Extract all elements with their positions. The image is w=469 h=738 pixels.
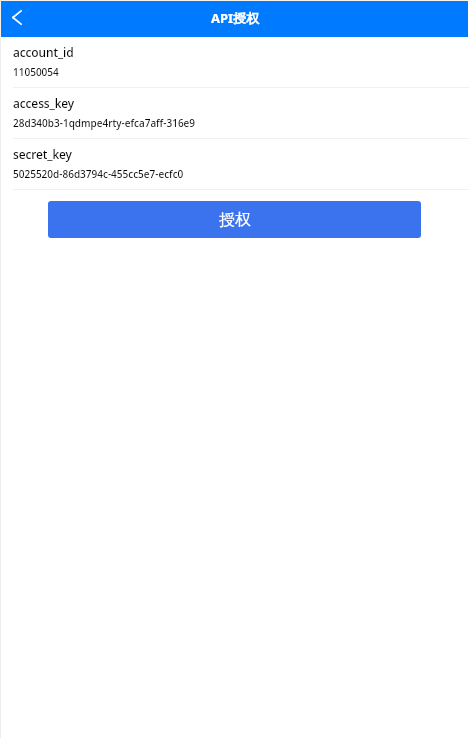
button[interactable]: Back — [0, 0, 36, 37]
staticText: 28d340b3-1qdmpe4rty-efca7aff-316e9 — [13, 116, 196, 130]
staticText: API授权 — [211, 9, 260, 27]
button[interactable]: secret_key — [0, 139, 469, 190]
staticText: 11050054 — [13, 65, 59, 79]
staticText: access_key — [13, 95, 75, 111]
staticText: 5025520d-86d3794c-455cc5e7-ecfc0 — [13, 167, 184, 181]
button[interactable]: 授权 — [48, 201, 421, 238]
button[interactable]: access_key — [0, 88, 469, 139]
staticText: secret_key — [13, 146, 72, 162]
staticText: account_id — [13, 44, 74, 60]
button[interactable]: account_id — [0, 37, 469, 88]
staticText: 授权 — [219, 210, 251, 230]
